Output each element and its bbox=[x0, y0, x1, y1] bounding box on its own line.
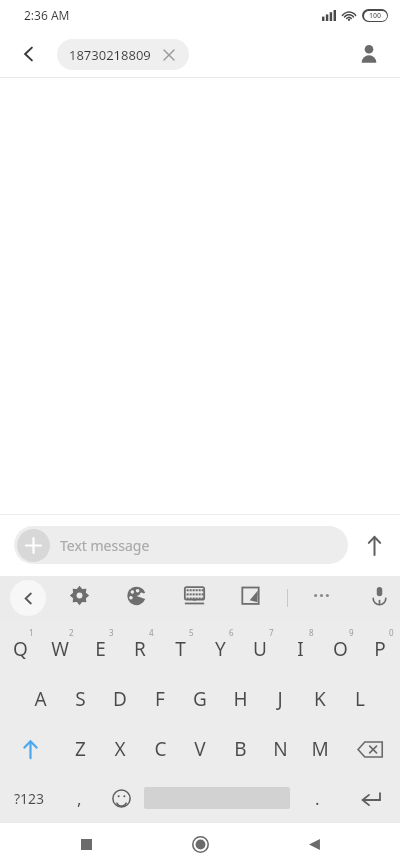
staticText: T bbox=[175, 636, 186, 662]
staticText: 1 bbox=[29, 627, 34, 638]
staticText: 6 bbox=[229, 627, 234, 638]
staticText: A bbox=[34, 686, 47, 712]
button[interactable]: Back bbox=[286, 822, 342, 866]
button[interactable]: K bbox=[300, 674, 340, 724]
button[interactable]: Attach bbox=[17, 529, 50, 562]
staticText: E bbox=[95, 636, 106, 662]
button[interactable]: C bbox=[140, 724, 180, 774]
staticText: 3 bbox=[109, 627, 114, 638]
staticText: 2 bbox=[69, 627, 74, 638]
button[interactable]: L bbox=[340, 674, 380, 724]
button[interactable]: Z bbox=[60, 724, 100, 774]
staticText: G bbox=[193, 686, 207, 712]
button[interactable]: Shift bbox=[0, 724, 60, 774]
staticText: 8 bbox=[309, 627, 314, 638]
button[interactable]: 18730218809 bbox=[57, 39, 189, 70]
button[interactable]: F bbox=[140, 674, 180, 724]
staticText: B bbox=[234, 736, 247, 762]
button[interactable]: Remove recipient bbox=[161, 47, 177, 63]
button[interactable]: Recent apps bbox=[58, 822, 114, 866]
staticText: Q bbox=[13, 636, 28, 662]
staticText: H bbox=[233, 686, 248, 712]
button[interactable]: W bbox=[40, 624, 80, 674]
button[interactable]: Voice input bbox=[360, 576, 398, 614]
button[interactable]: U bbox=[240, 624, 280, 674]
staticText: 4 bbox=[149, 627, 154, 638]
staticText: 7 bbox=[269, 627, 274, 638]
staticText: ?123 bbox=[14, 789, 45, 808]
button[interactable]: Keyboard layout bbox=[175, 576, 213, 614]
staticText: O bbox=[333, 636, 348, 662]
button[interactable]: Back bbox=[12, 37, 46, 71]
staticText: 2:36 AM bbox=[24, 7, 70, 23]
button[interactable]: R bbox=[120, 624, 160, 674]
staticText: D bbox=[113, 686, 127, 712]
button[interactable]: Period bbox=[292, 774, 342, 822]
staticText: Z bbox=[75, 736, 86, 762]
staticText: 100 bbox=[369, 11, 382, 21]
button[interactable]: More options bbox=[302, 576, 340, 614]
button[interactable]: Themes bbox=[117, 576, 155, 614]
staticText: J bbox=[277, 686, 283, 712]
button[interactable]: Enter bbox=[342, 774, 400, 822]
button[interactable]: ?123 bbox=[0, 774, 58, 822]
staticText: 5 bbox=[189, 627, 194, 638]
button[interactable]: E bbox=[80, 624, 120, 674]
button[interactable]: M bbox=[300, 724, 340, 774]
staticText: U bbox=[253, 636, 267, 662]
button[interactable]: Home bbox=[172, 822, 228, 866]
button[interactable]: X bbox=[100, 724, 140, 774]
button[interactable]: Collapse toolbar bbox=[10, 580, 46, 616]
staticText: X bbox=[114, 736, 126, 762]
button[interactable]: T bbox=[160, 624, 200, 674]
staticText: C bbox=[154, 736, 167, 762]
staticText: 0 bbox=[389, 627, 394, 638]
staticText: 9 bbox=[349, 627, 354, 638]
staticText: M bbox=[311, 736, 329, 762]
button[interactable]: A bbox=[20, 674, 60, 724]
staticText: Y bbox=[215, 636, 226, 662]
button[interactable]: Attach bbox=[14, 526, 348, 564]
button[interactable]: Emoji bbox=[100, 774, 142, 822]
button[interactable]: D bbox=[100, 674, 140, 724]
button[interactable]: P bbox=[360, 624, 400, 674]
staticText: L bbox=[355, 686, 365, 712]
button[interactable]: V bbox=[180, 724, 220, 774]
button[interactable]: O bbox=[320, 624, 360, 674]
staticText: R bbox=[134, 636, 146, 662]
staticText: Text message bbox=[60, 536, 150, 555]
button[interactable]: G bbox=[180, 674, 220, 724]
staticText: S bbox=[75, 686, 86, 712]
button[interactable]: Settings bbox=[60, 576, 98, 614]
staticText: P bbox=[374, 636, 386, 662]
staticText: , bbox=[77, 787, 82, 810]
button[interactable]: B bbox=[220, 724, 260, 774]
button[interactable]: Contacts bbox=[350, 35, 388, 73]
button[interactable]: H bbox=[220, 674, 260, 724]
button[interactable]: I bbox=[280, 624, 320, 674]
staticText: F bbox=[155, 686, 165, 712]
button[interactable]: Y bbox=[200, 624, 240, 674]
staticText: V bbox=[194, 736, 206, 762]
staticText: 18730218809 bbox=[69, 46, 151, 64]
staticText: N bbox=[273, 736, 288, 762]
staticText: I bbox=[297, 636, 304, 662]
staticText: W bbox=[51, 636, 69, 662]
button[interactable]: Comma bbox=[58, 774, 100, 822]
button[interactable]: S bbox=[60, 674, 100, 724]
button[interactable]: Backspace bbox=[340, 724, 400, 774]
button[interactable]: Send bbox=[348, 523, 400, 567]
button[interactable]: J bbox=[260, 674, 300, 724]
staticText: . bbox=[315, 787, 320, 810]
button[interactable]: N bbox=[260, 724, 300, 774]
button[interactable]: Q bbox=[0, 624, 40, 674]
button[interactable]: Handwriting bbox=[231, 576, 269, 614]
staticText: K bbox=[314, 686, 326, 712]
